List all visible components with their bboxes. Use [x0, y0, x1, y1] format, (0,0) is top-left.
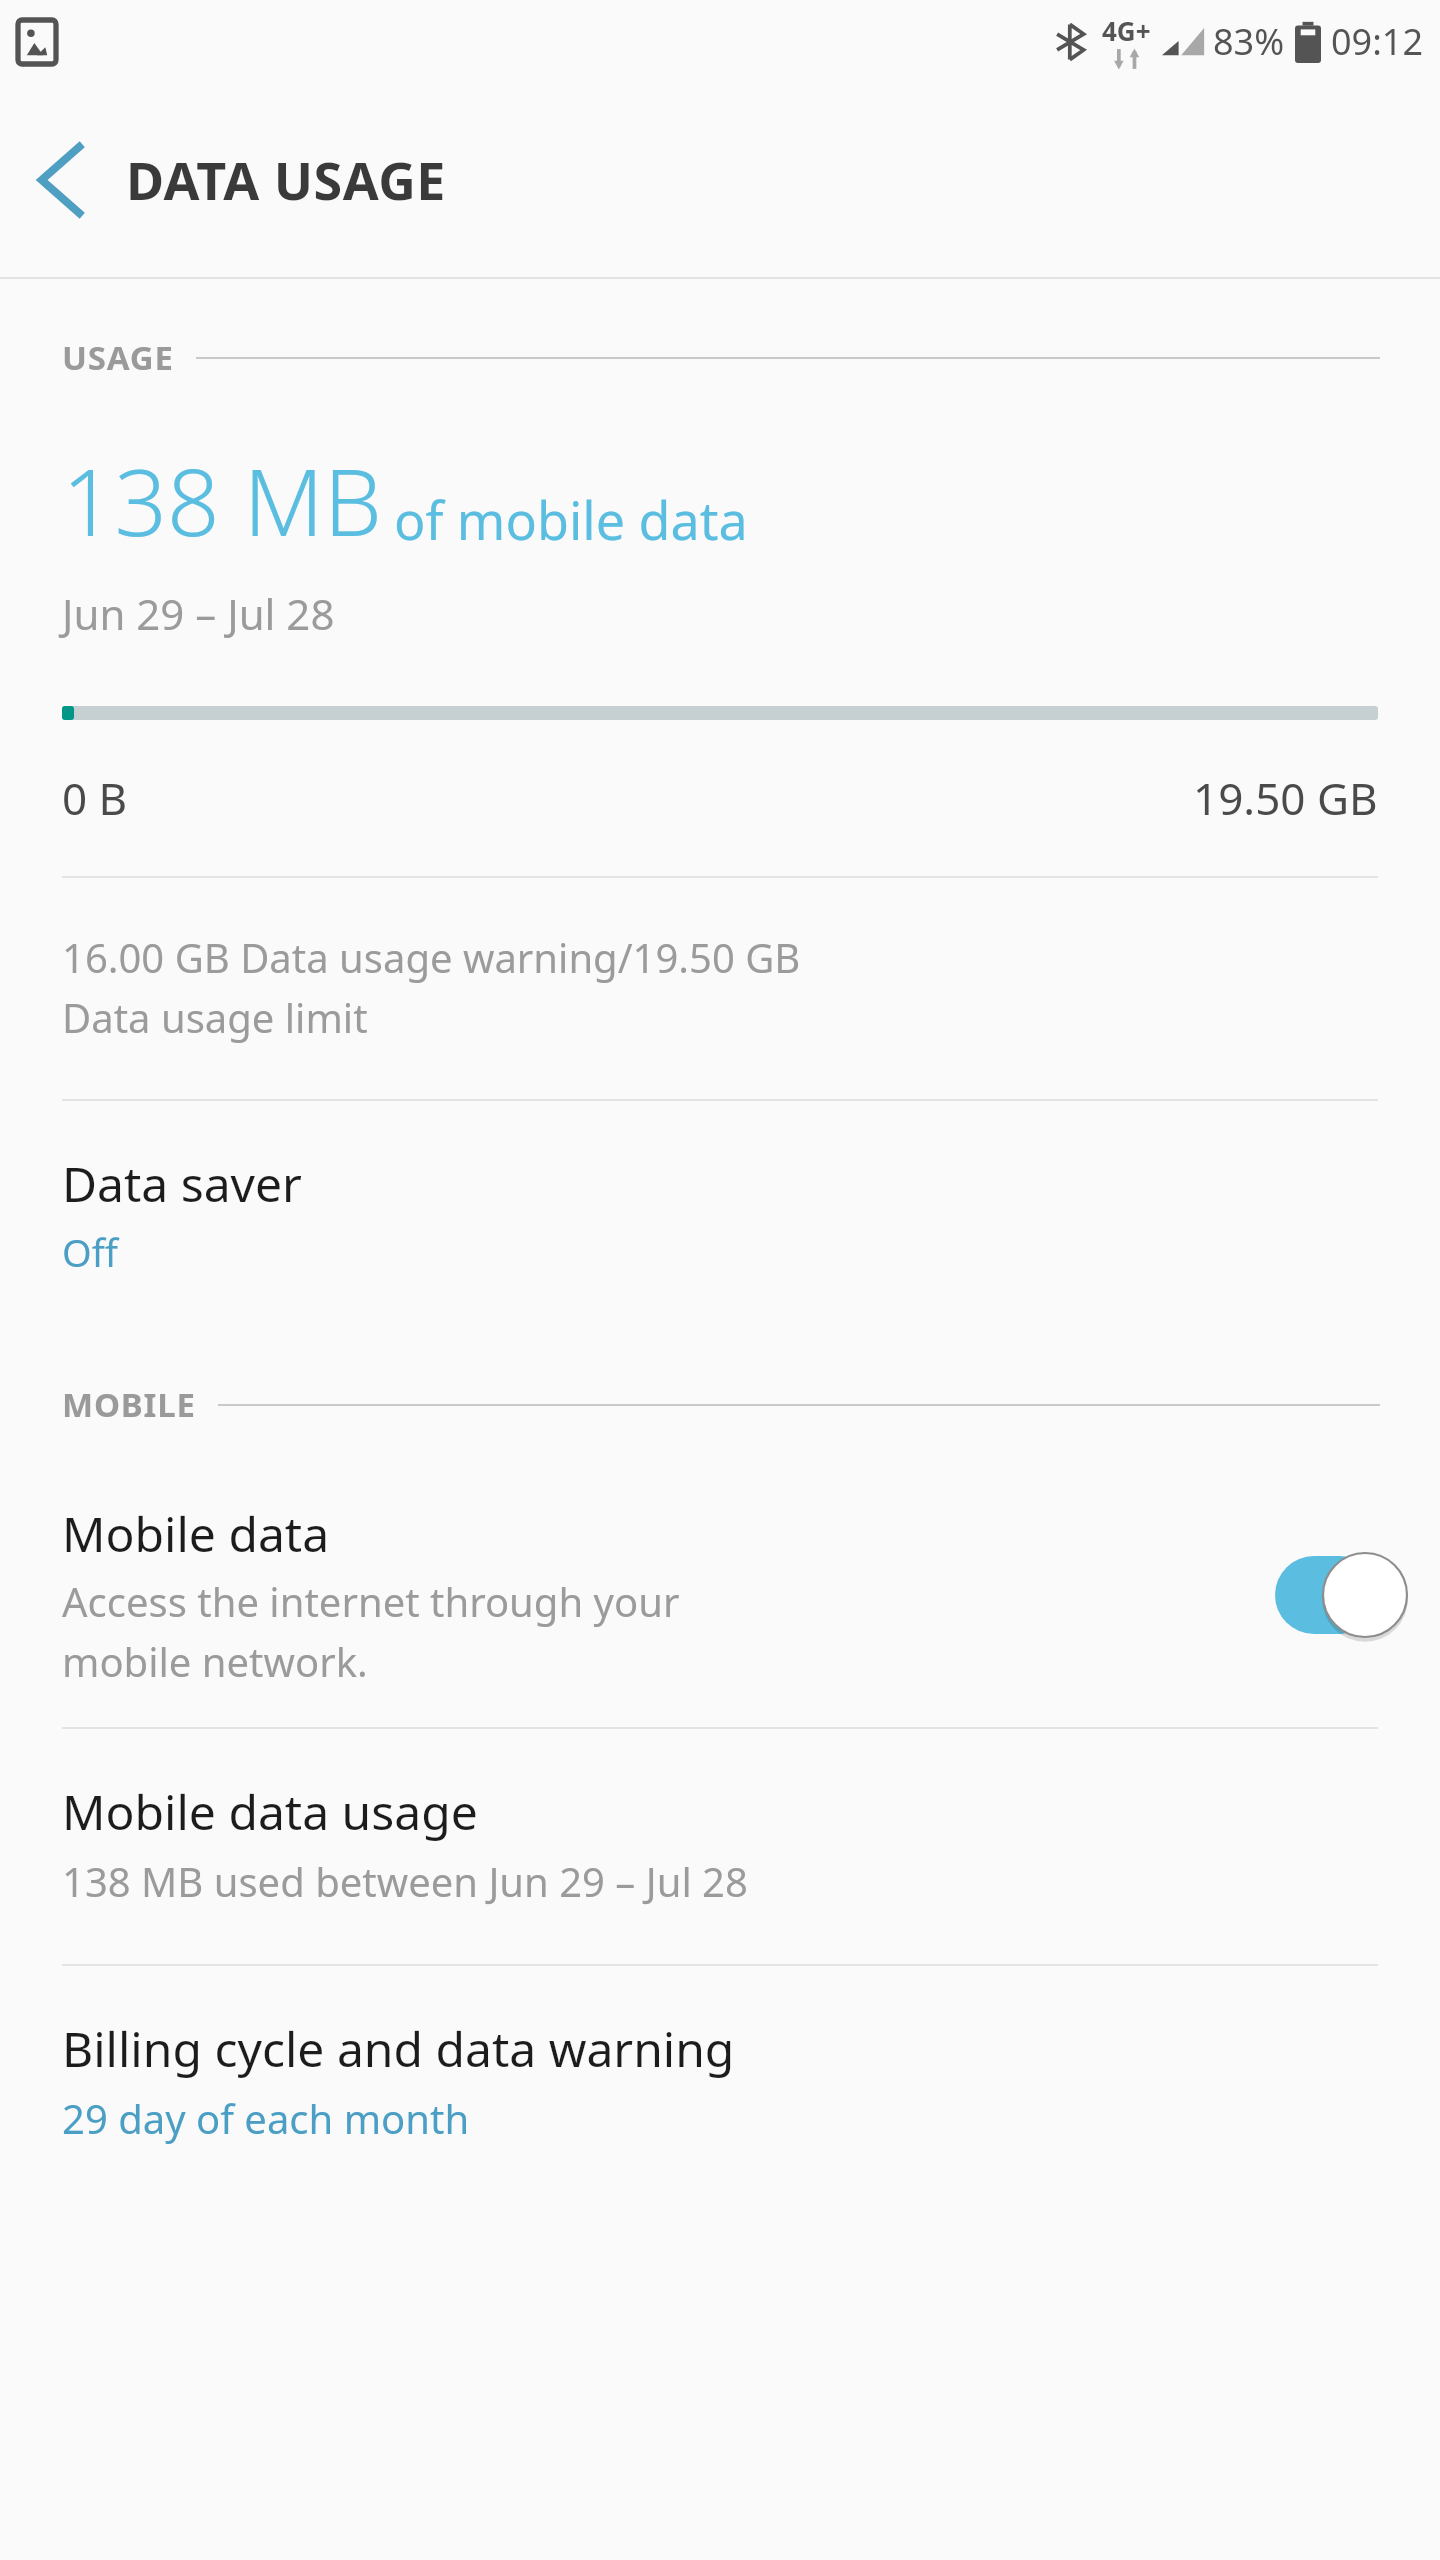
- button[interactable]: Billing cycle and data warning: [0, 1966, 1440, 2195]
- button[interactable]: Mobile data toggle, on: [1266, 1535, 1416, 1655]
- staticText: 29 day of each month: [62, 2091, 470, 2145]
- staticText: 4G+: [1102, 13, 1151, 48]
- button[interactable]: Data saver: [0, 1101, 1440, 1330]
- staticText: Jun 29 – Jul 28: [62, 585, 335, 642]
- staticText: 19.50 GB: [1193, 768, 1378, 828]
- staticText: DATA USAGE: [126, 144, 446, 215]
- staticText: MOBILE: [62, 1382, 196, 1427]
- button[interactable]: Back: [0, 110, 120, 250]
- button[interactable]: Mobile data: [0, 1465, 1440, 1727]
- staticText: 09:12: [1331, 17, 1424, 66]
- staticText: 16.00 GB Data usage warning/19.50 GB Dat…: [62, 930, 801, 1045]
- staticText: 138 MB used between Jun 29 – Jul 28: [62, 1854, 748, 1908]
- button[interactable]: Mobile data usage: [0, 1729, 1440, 1964]
- staticText: Billing cycle and data warning: [62, 2016, 735, 2081]
- staticText: Mobile data: [62, 1501, 330, 1566]
- staticText: of mobile data: [394, 484, 748, 555]
- staticText: 83%: [1213, 17, 1285, 66]
- staticText: 138 MB: [62, 438, 382, 563]
- staticText: 0 B: [62, 768, 128, 828]
- staticText: USAGE: [62, 335, 174, 380]
- staticText: Data saver: [62, 1151, 302, 1216]
- staticText: Mobile data usage: [62, 1779, 478, 1844]
- staticText: Access the internet through your mobile …: [62, 1574, 680, 1689]
- staticText: Off: [62, 1226, 118, 1278]
